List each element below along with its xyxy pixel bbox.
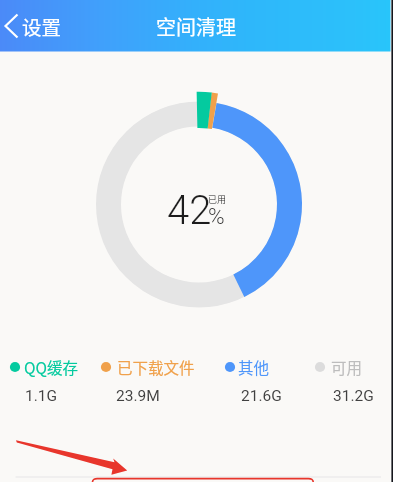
button[interactable]: QQ缓存 xyxy=(8,356,79,378)
staticText: 31.2G xyxy=(333,387,374,405)
staticText: 23.9M xyxy=(116,387,160,405)
staticText: 已下载文件 xyxy=(117,356,195,378)
button[interactable]: 已下载文件 xyxy=(99,356,195,378)
button[interactable]: 可用 xyxy=(313,356,363,378)
staticText: 可用 xyxy=(331,356,363,378)
staticText: 42 xyxy=(167,187,212,234)
staticText: 21.6G xyxy=(241,387,282,405)
staticText: 已用 xyxy=(208,193,227,206)
staticText: 1.1G xyxy=(25,387,58,405)
staticText: 设置 xyxy=(22,12,62,40)
button[interactable]: 其他 xyxy=(223,356,270,378)
staticText: % xyxy=(208,203,225,229)
staticText: 空间清理 xyxy=(156,12,236,41)
staticText: 其他 xyxy=(238,356,270,378)
button[interactable]: 设置 xyxy=(0,0,68,52)
staticText: QQ缓存 xyxy=(24,356,79,378)
